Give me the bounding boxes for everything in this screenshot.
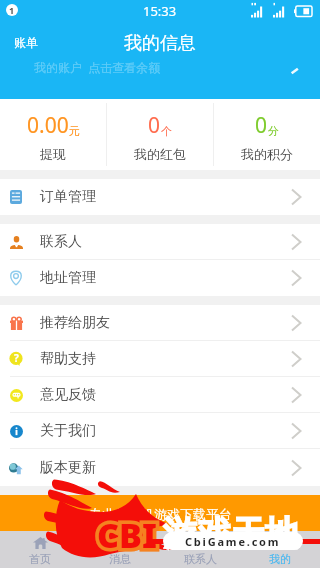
staticText: 首页 [29,552,51,566]
staticText: 0.00 [27,111,69,140]
staticText: 帮助支持 [40,350,96,368]
staticText: 元 [69,124,80,138]
button[interactable]: 地址管理 [0,260,320,296]
staticText: 分 [268,124,279,138]
button[interactable]: 0 [214,99,320,170]
staticText: CbiGame.com [185,534,281,549]
staticText: ? [14,351,19,365]
staticText: 意见反馈 [40,386,96,404]
button[interactable]: 联系人 [0,224,320,259]
staticText: 消息 [109,552,131,566]
staticText: 联系人 [184,552,217,566]
button[interactable]: 版本更新 [0,449,320,486]
button[interactable]: 消息 [80,531,160,568]
staticText: 游戏天地 [163,512,299,555]
staticText: 个 [161,124,172,138]
button[interactable]: 意见反馈 [0,377,320,412]
button[interactable]: 推荐给朋友 [0,305,320,340]
button[interactable]: 账单 [0,28,52,57]
staticText: 我的红包 [134,146,186,162]
staticText: 专业的手机游戏下载平台 [89,506,232,522]
staticText: 账单 [14,35,38,50]
button[interactable]: 关于我们 [0,413,320,448]
staticText: CBI [97,512,157,558]
staticText: CBI [97,512,157,558]
staticText: 1 [9,4,15,16]
button[interactable]: 专业的手机游戏下载平台 [0,495,320,531]
button[interactable]: 0 [107,99,213,170]
button[interactable]: ? [0,341,320,376]
staticText: 地址管理 [40,269,96,287]
button[interactable]: 我的 [240,531,320,568]
staticText: 联系人 [40,233,82,251]
staticText: 我的积分 [241,146,293,162]
button[interactable]: 首页 [0,531,80,568]
button[interactable]: 联系人 [160,531,240,568]
staticText: 关于我们 [40,422,96,440]
staticText: 0 [255,111,268,140]
button[interactable]: 订单管理 [0,179,320,215]
other: Account balance [289,62,301,78]
staticText: 15:33 [143,2,177,20]
staticText: 推荐给朋友 [40,314,110,332]
button[interactable]: 我的账户 点击查看余额 [0,58,320,99]
staticText: 提现 [40,146,66,162]
button[interactable]: 0.00 [0,99,106,170]
staticText: 我的账户 点击查看余额 [34,59,161,75]
staticText: 我的 [269,552,291,566]
staticText: 版本更新 [40,459,96,477]
staticText: 0 [148,111,161,140]
staticText: 订单管理 [40,188,96,206]
staticText: 我的信息 [124,32,196,55]
